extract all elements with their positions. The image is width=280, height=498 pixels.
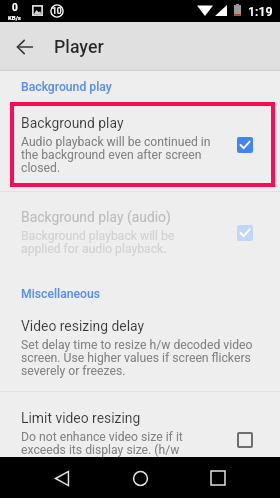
staticText: Background play xyxy=(21,80,112,94)
staticText: 0 xyxy=(12,2,18,14)
staticText: KB/s xyxy=(8,14,21,21)
staticText: 10 xyxy=(52,6,62,16)
staticText: Limit video resizing xyxy=(21,410,141,426)
button[interactable]: Navigate up xyxy=(6,28,43,65)
button[interactable]: Limit video resizing xyxy=(0,392,280,457)
staticText: Background playback will be applied for … xyxy=(21,229,175,256)
button[interactable]: Background play (audio) xyxy=(0,192,280,266)
button[interactable]: Background play xyxy=(0,102,280,187)
staticText: 1:19 xyxy=(248,4,273,19)
button[interactable]: Recent apps xyxy=(198,458,238,498)
staticText: Background play (audio) xyxy=(21,209,171,225)
button[interactable]: Video resizing delay xyxy=(0,301,280,391)
button[interactable]: Back xyxy=(42,458,82,498)
staticText: Player xyxy=(54,36,104,57)
staticText: Set delay time to resize h/w decoded vid… xyxy=(21,338,253,378)
button[interactable]: Home xyxy=(120,458,160,498)
staticText: Miscellaneous xyxy=(21,287,100,301)
staticText: Do not enhance video size if it exceeds … xyxy=(21,430,183,457)
staticText: Video resizing delay xyxy=(21,318,145,334)
staticText: Background play xyxy=(21,115,124,131)
staticText: Audio playback will be continued in the … xyxy=(21,135,211,175)
button[interactable]: Background play xyxy=(0,102,280,187)
